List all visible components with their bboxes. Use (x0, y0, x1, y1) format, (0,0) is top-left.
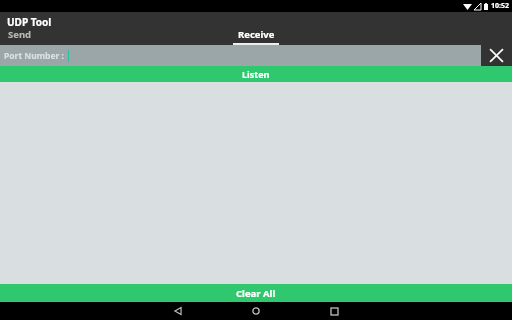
staticText: Clear All (236, 287, 276, 300)
button[interactable]: Clear All (0, 284, 512, 302)
staticText: Send (8, 28, 32, 41)
button[interactable]: Recent apps (319, 302, 349, 320)
staticText: Port Number : (4, 50, 64, 62)
staticText: UDP Tool (7, 15, 52, 29)
button[interactable]: Back (163, 302, 193, 320)
button[interactable]: Home (241, 302, 271, 320)
staticText: 10:52 (491, 1, 509, 11)
button[interactable]: Receive (196, 28, 316, 45)
button[interactable]: Port Number : (0, 45, 481, 66)
button[interactable]: Send (0, 28, 80, 45)
staticText: Receive (238, 28, 275, 41)
button[interactable]: Clear (481, 45, 512, 66)
button[interactable]: Listen (0, 66, 512, 82)
staticText: Listen (242, 68, 270, 80)
